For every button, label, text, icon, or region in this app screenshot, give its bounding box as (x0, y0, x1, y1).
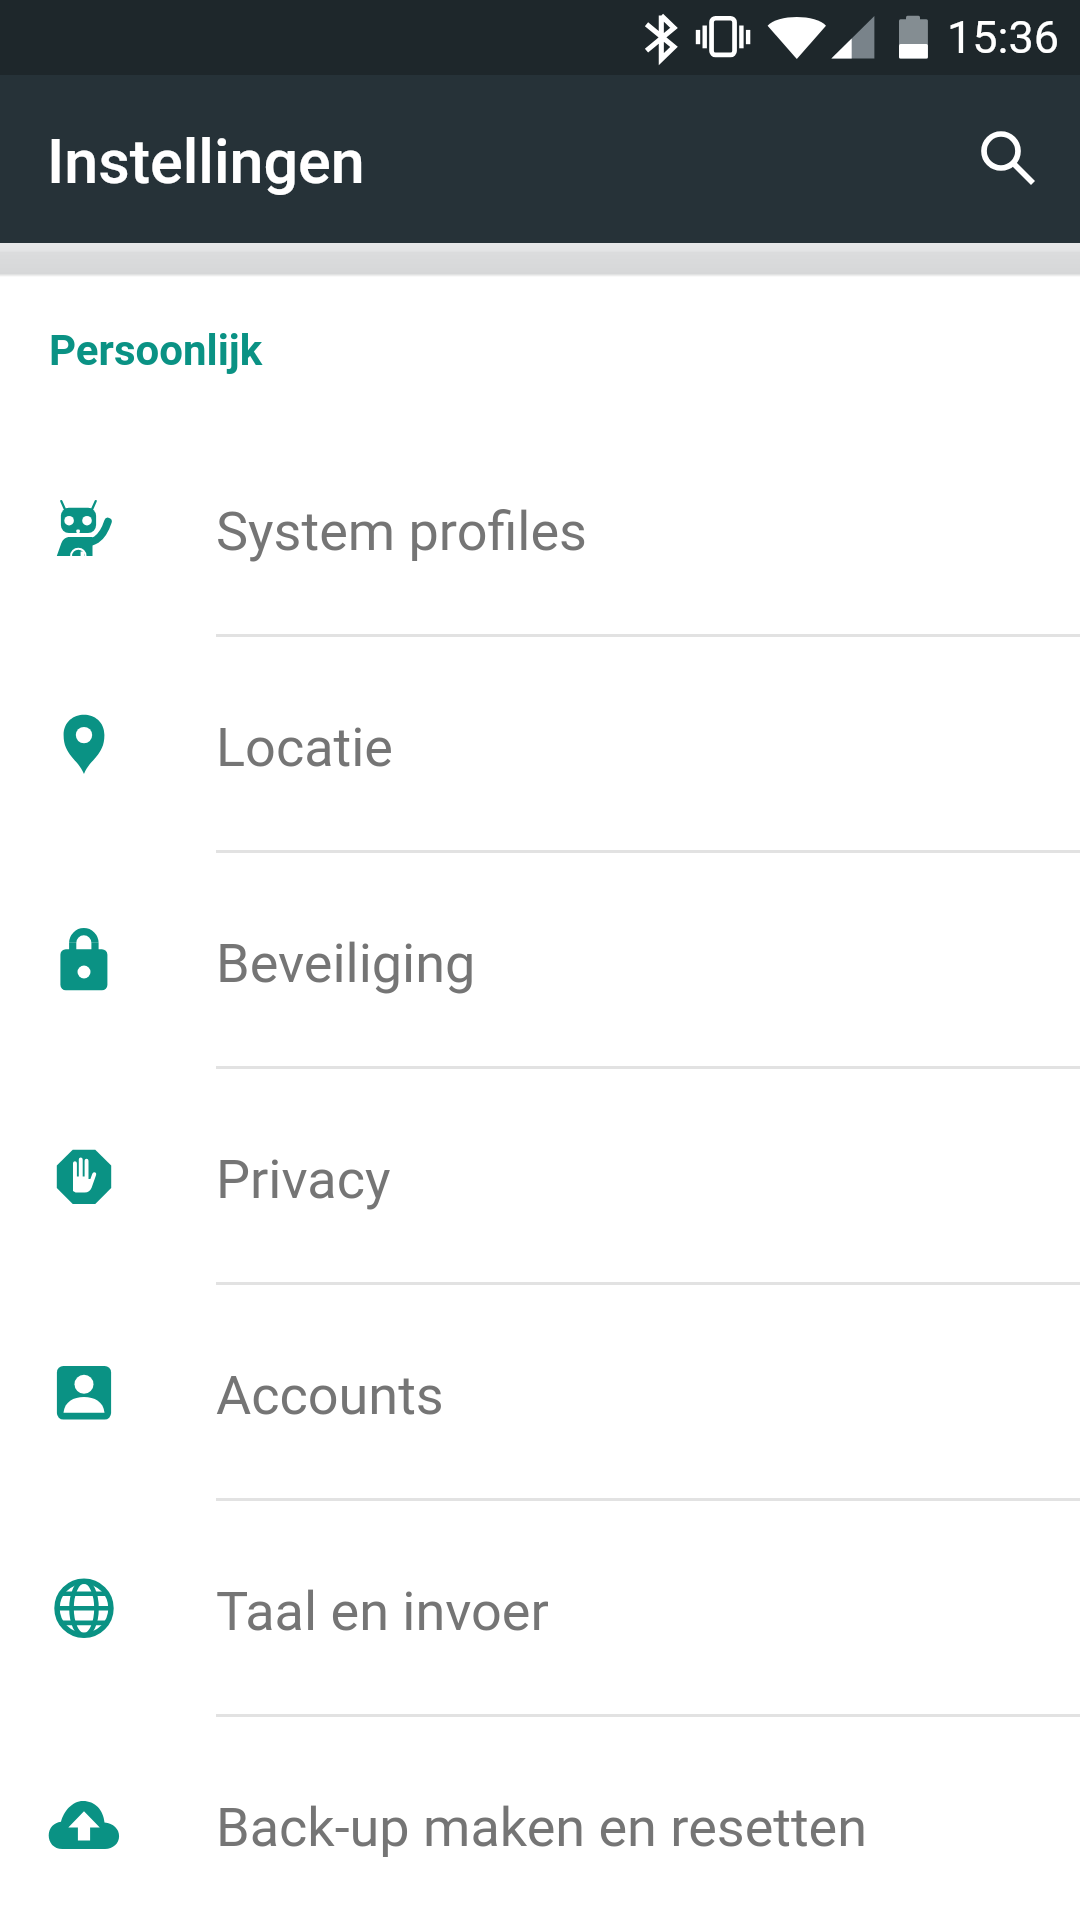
staticText: Accounts (216, 1364, 444, 1427)
staticText: Locatie (216, 716, 393, 779)
staticText: Privacy (216, 1148, 391, 1211)
staticText: 15:36 (947, 11, 1060, 64)
button[interactable]: Beveiliging (0, 850, 1080, 1066)
staticText: Taal en invoer (216, 1580, 549, 1643)
button[interactable]: System profiles (0, 418, 1080, 634)
button[interactable]: Locatie (0, 634, 1080, 850)
staticText: Instellingen (47, 126, 365, 197)
button[interactable]: Search (962, 114, 1058, 210)
button[interactable]: Privacy (0, 1066, 1080, 1282)
staticText: Back-up maken en resetten (216, 1796, 868, 1859)
button[interactable]: Back-up maken en resetten (0, 1714, 1080, 1920)
button[interactable]: Taal en invoer (0, 1498, 1080, 1714)
staticText: Persoonlijk (49, 326, 263, 375)
staticText: System profiles (216, 500, 587, 563)
staticText: Beveiliging (216, 932, 476, 995)
button[interactable]: Accounts (0, 1282, 1080, 1498)
